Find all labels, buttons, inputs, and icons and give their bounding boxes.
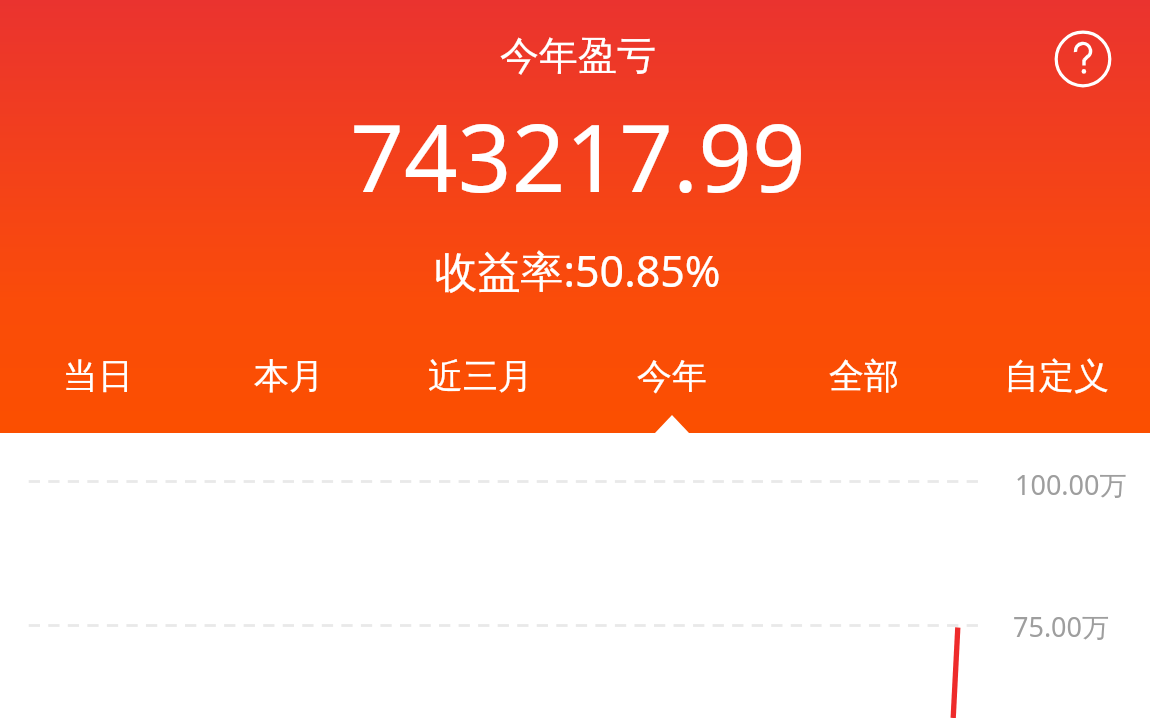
staticText: 本月: [254, 354, 324, 398]
button[interactable]: 全部: [768, 344, 960, 408]
staticText: 自定义: [1004, 354, 1109, 398]
staticText: 743217.99: [350, 92, 806, 220]
staticText: 当日: [63, 354, 133, 398]
button[interactable]: 今年: [576, 344, 768, 408]
staticText: 收益率:50.85%: [434, 241, 721, 300]
button[interactable]: 当日: [2, 344, 193, 408]
button[interactable]: Help: [1052, 28, 1114, 90]
staticText: 全部: [829, 354, 899, 398]
staticText: 近三月: [428, 354, 533, 398]
button[interactable]: 近三月: [384, 344, 576, 408]
staticText: 100.00万: [1015, 466, 1127, 503]
staticText: 75.00万: [1013, 608, 1110, 645]
staticText: 今年盈亏: [500, 31, 656, 80]
button[interactable]: 本月: [193, 344, 384, 408]
button[interactable]: 自定义: [960, 344, 1150, 408]
staticText: 今年: [637, 354, 707, 398]
